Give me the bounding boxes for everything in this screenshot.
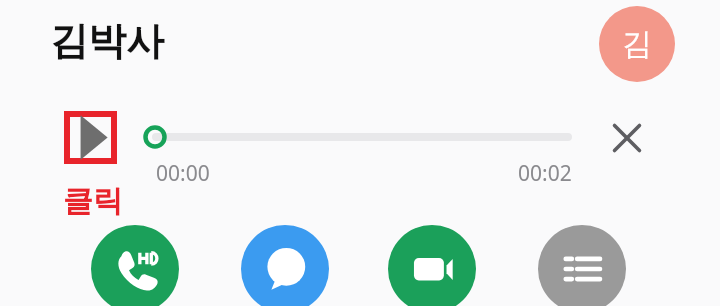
- button[interactable]: Profile: [599, 6, 675, 82]
- button[interactable]: Play: [64, 111, 117, 164]
- button[interactable]: Video call: [388, 225, 476, 306]
- staticText: 00:02: [518, 159, 572, 187]
- button[interactable]: Message: [241, 225, 329, 306]
- button[interactable]: Seek position: [141, 123, 169, 151]
- staticText: 00:00: [156, 159, 210, 187]
- button[interactable]: HD voice call: [91, 225, 179, 306]
- staticText: 김박사: [50, 17, 164, 65]
- button[interactable]: 김박사: [50, 16, 250, 66]
- staticText: 김: [622, 25, 652, 63]
- staticText: 클릭: [63, 182, 123, 220]
- button[interactable]: More options: [538, 225, 626, 306]
- button[interactable]: Close: [601, 112, 653, 164]
